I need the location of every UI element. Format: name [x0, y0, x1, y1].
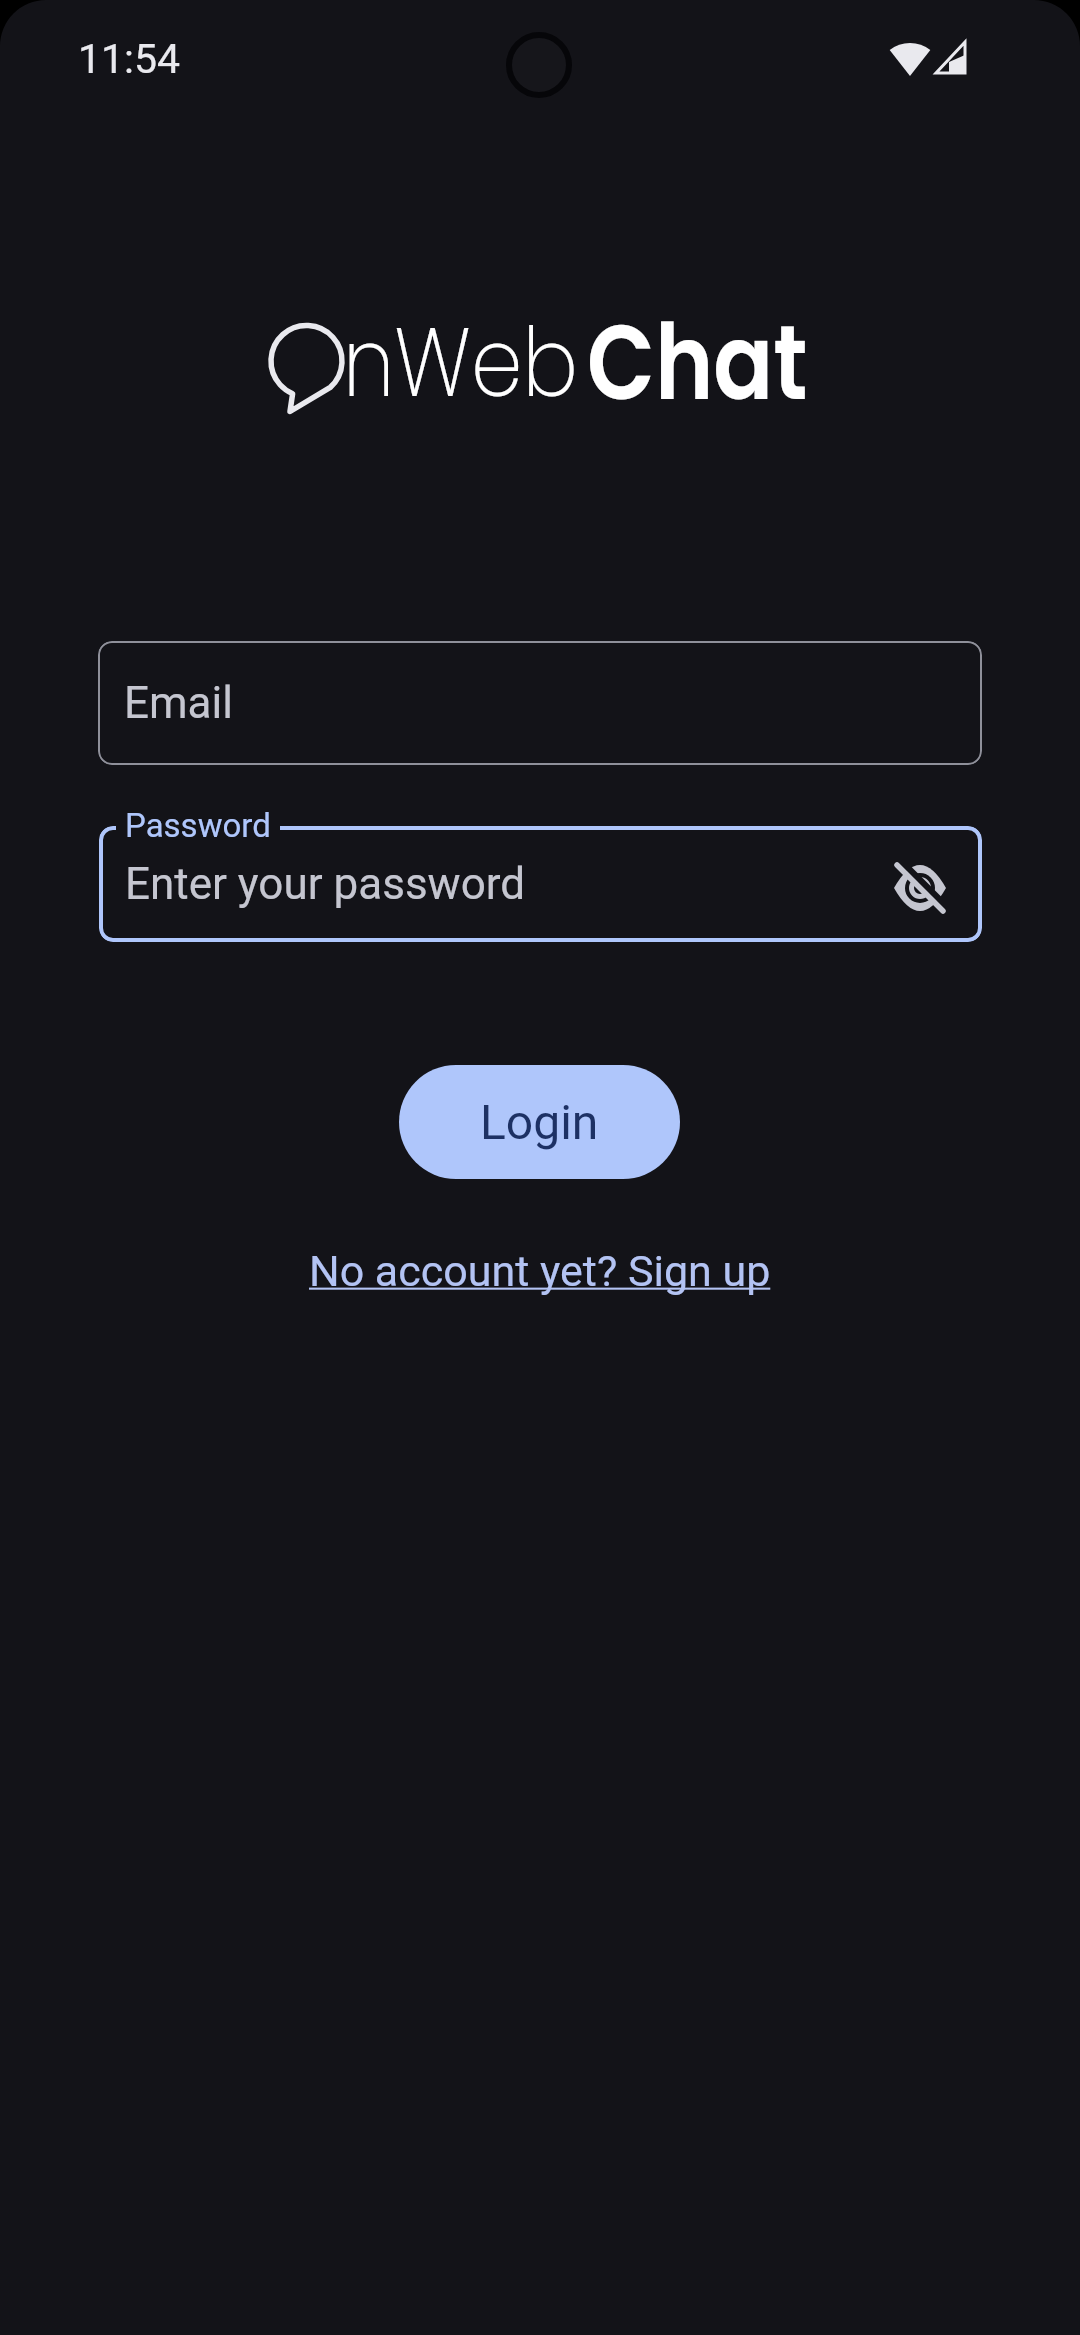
staticText: Email [124, 677, 233, 729]
button[interactable]: Login [399, 1065, 680, 1179]
staticText: 11:54 [78, 35, 181, 83]
button[interactable]: Email [98, 641, 982, 765]
staticText: Enter your password [125, 858, 526, 910]
staticText: Login [480, 1094, 599, 1150]
button[interactable]: Enter your password [99, 826, 982, 942]
staticText: Password [125, 806, 271, 845]
button[interactable] [883, 851, 957, 925]
button[interactable]: No account yet? Sign up [309, 1246, 771, 1296]
staticText: nWeb [343, 294, 578, 430]
staticText: Chat [587, 290, 808, 436]
